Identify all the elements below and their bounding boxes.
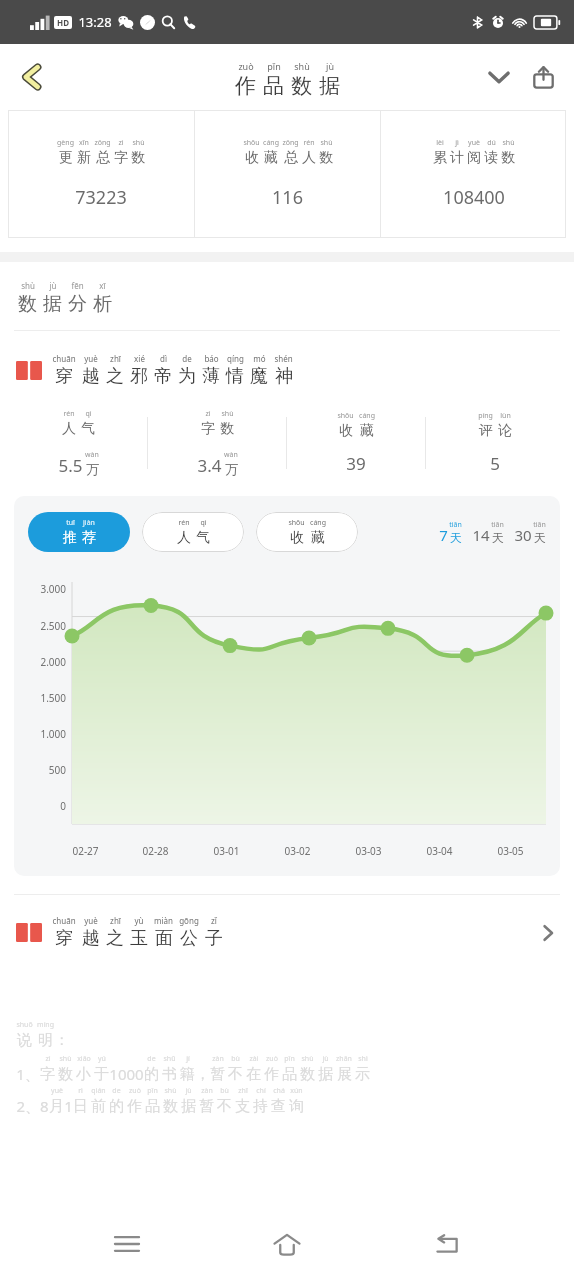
button[interactable]: Expand — [478, 56, 520, 98]
staticText: 月 — [49, 1097, 64, 1116]
button[interactable]: Back — [10, 55, 54, 99]
button[interactable]: chuān — [0, 915, 574, 950]
staticText: 人 — [302, 149, 316, 167]
staticText: 5.5 — [58, 454, 83, 477]
staticText: 13:28 — [78, 13, 112, 31]
staticText: cáng — [263, 138, 279, 148]
staticText: 7 — [439, 525, 448, 545]
staticText: 收 — [245, 149, 259, 167]
button[interactable]: píng — [426, 411, 564, 475]
staticText: 展 — [337, 1065, 352, 1084]
staticText: zǐ — [211, 915, 217, 926]
staticText: chí — [256, 1086, 266, 1096]
staticText: 人 — [177, 529, 191, 547]
staticText: 籍 — [180, 1065, 195, 1084]
staticText: fēn — [71, 280, 84, 291]
staticText: shōu — [243, 138, 260, 148]
staticText: 总 — [96, 149, 110, 167]
staticText: 累 — [433, 149, 447, 167]
staticText: 30 — [514, 525, 532, 545]
staticText: yuè — [84, 353, 98, 364]
staticText: pǐn — [284, 1054, 295, 1064]
staticText: 阅 — [467, 149, 481, 167]
staticText: 日 — [73, 1097, 88, 1116]
staticText: xié — [134, 353, 145, 364]
staticText: wàn — [224, 450, 238, 460]
staticText: 数 — [501, 149, 515, 167]
staticText: 02-28 — [142, 844, 169, 858]
staticText: xún — [290, 1086, 303, 1096]
button[interactable]: rén — [10, 409, 147, 477]
staticText: shù — [221, 409, 234, 419]
staticText: 更 — [59, 149, 73, 167]
staticText: yù — [134, 915, 144, 926]
staticText: 支 — [235, 1097, 250, 1116]
staticText: 品 — [263, 73, 284, 99]
button[interactable]: chuān — [0, 353, 574, 388]
button[interactable]: shōu — [195, 110, 380, 238]
button[interactable]: Home — [253, 1210, 321, 1278]
staticText: míng — [37, 1020, 54, 1030]
staticText: 薄 — [202, 365, 220, 388]
staticText: 数 — [220, 420, 234, 438]
staticText: zhī — [110, 915, 121, 926]
staticText: 不 — [217, 1097, 232, 1116]
staticText: zǒng — [94, 138, 111, 148]
staticText: ： — [54, 1031, 69, 1050]
button[interactable]: zì — [148, 409, 286, 477]
button[interactable]: Share — [522, 56, 564, 98]
staticText: zàn — [212, 1054, 224, 1064]
staticText: 在 — [246, 1065, 261, 1084]
staticText: 数 — [58, 1065, 73, 1084]
staticText: 为 — [178, 365, 196, 388]
button[interactable]: rén — [142, 512, 244, 552]
button[interactable]: 14 — [472, 520, 504, 545]
staticText: rén — [63, 409, 75, 419]
button[interactable]: shōu — [287, 411, 425, 475]
staticText: 品 — [282, 1065, 297, 1084]
staticText: qì — [200, 518, 207, 528]
staticText: zǒng — [282, 138, 299, 148]
staticText: dì — [160, 353, 167, 364]
staticText: bù — [231, 1054, 240, 1064]
staticText: 藏 — [360, 422, 374, 440]
staticText: bù — [220, 1086, 229, 1096]
staticText: HD — [57, 17, 69, 28]
button[interactable]: Recent apps — [93, 1210, 161, 1278]
staticText: jù — [185, 1086, 192, 1096]
button[interactable]: 30 — [514, 520, 546, 545]
staticText: 数 — [18, 292, 37, 316]
staticText: 2.500 — [40, 619, 66, 633]
staticText: 03-01 — [213, 844, 240, 858]
staticText: lèi — [436, 138, 444, 148]
staticText: lùn — [500, 411, 511, 421]
staticText: shì — [358, 1054, 368, 1064]
staticText: shù — [301, 1054, 314, 1064]
staticText: 0 — [60, 799, 66, 813]
staticText: 面 — [155, 927, 173, 950]
staticText: 分 — [68, 292, 87, 316]
staticText: 穿 — [55, 365, 73, 388]
staticText: shù — [502, 138, 515, 148]
staticText: rì — [78, 1086, 83, 1096]
staticText: dú — [487, 138, 496, 148]
staticText: jù — [322, 1054, 329, 1064]
button[interactable]: gèng — [8, 110, 194, 238]
button[interactable]: lèi — [381, 110, 566, 238]
staticText: 书 — [162, 1065, 177, 1084]
staticText: 不 — [228, 1065, 243, 1084]
button[interactable]: tuī — [28, 512, 130, 552]
button[interactable]: Back — [414, 1210, 482, 1278]
staticText: 2、8 — [16, 1096, 49, 1116]
staticText: 情 — [226, 365, 244, 388]
staticText: shén — [274, 353, 293, 364]
staticText: 的 — [144, 1065, 159, 1084]
staticText: 暂 — [210, 1065, 225, 1084]
button[interactable]: shōu — [256, 512, 358, 552]
staticText: 析 — [93, 292, 112, 316]
staticText: 示 — [355, 1065, 370, 1084]
staticText: 天 — [534, 530, 546, 545]
staticText: shōu — [288, 518, 305, 528]
staticText: 字 — [114, 149, 128, 167]
button[interactable]: 7 — [439, 520, 462, 545]
